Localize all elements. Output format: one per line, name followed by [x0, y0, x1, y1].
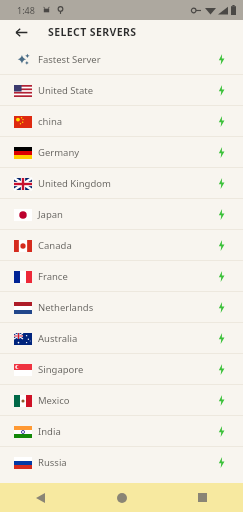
button[interactable]: Russia [0, 447, 243, 477]
staticText: India [38, 425, 61, 438]
button[interactable]: United State [0, 75, 243, 105]
staticText: SELECT SERVERS [48, 25, 137, 39]
button[interactable]: India [0, 416, 243, 446]
button[interactable]: Singapore [0, 354, 243, 384]
staticText: Australia [38, 332, 78, 345]
button[interactable]: Canada [0, 230, 243, 260]
staticText: Singapore [38, 363, 84, 376]
button[interactable]: France [0, 261, 243, 291]
staticText: china [38, 115, 63, 128]
button[interactable]: china [0, 106, 243, 136]
staticText: Canada [38, 239, 72, 252]
button[interactable]: United Kingdom [0, 168, 243, 198]
button[interactable]: Germany [0, 137, 243, 167]
staticText: 1:48 [17, 4, 35, 16]
staticText: Mexico [38, 394, 70, 407]
staticText: Japan [38, 208, 63, 221]
button[interactable]: Netherlands [0, 292, 243, 322]
staticText: Netherlands [38, 301, 94, 314]
staticText: United Kingdom [38, 177, 111, 190]
button[interactable]: Home [81, 483, 162, 512]
button[interactable]: Fastest Server [0, 44, 243, 74]
button[interactable]: Japan [0, 199, 243, 229]
staticText: Russia [38, 456, 67, 469]
button[interactable]: Back [11, 22, 32, 43]
staticText: United State [38, 84, 94, 97]
button[interactable]: Recent apps [162, 483, 243, 512]
staticText: Fastest Server [38, 53, 101, 66]
button[interactable]: Mexico [0, 385, 243, 415]
staticText: France [38, 270, 68, 283]
button[interactable]: Australia [0, 323, 243, 353]
button[interactable]: Back [0, 483, 81, 512]
staticText: Germany [38, 146, 80, 159]
